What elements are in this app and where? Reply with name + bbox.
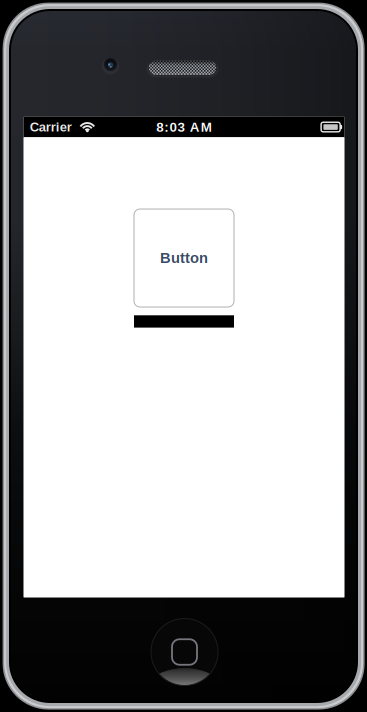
button[interactable]: Button — [134, 209, 234, 307]
staticText: 8:03 AM — [156, 120, 212, 135]
staticText: Carrier — [30, 120, 72, 134]
staticText: Button — [160, 250, 208, 266]
